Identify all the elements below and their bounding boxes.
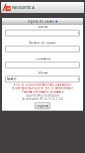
staticText: Ingresar — [37, 104, 48, 107]
staticText: Idioma — [38, 71, 47, 75]
staticText: Ingreso de usuario — [27, 20, 54, 23]
button[interactable]: Ingresar — [35, 103, 50, 109]
staticText: Si no se encuentra habilitado para acced… — [13, 83, 71, 86]
staticText: al sistema comuniquese con el administra… — [12, 86, 73, 90]
staticText: Para más información contactar a — [22, 90, 63, 94]
staticText: Nombre de usuario — [29, 41, 56, 45]
staticText: Su dirección IP es 10.0.1.24 — [22, 97, 63, 101]
staticText: Español — [6, 77, 16, 81]
staticText: Contraseña — [35, 57, 50, 61]
staticText: Sistema — [38, 25, 47, 29]
staticText: NEOGISTICA — [12, 5, 35, 10]
staticText: soporte@neogistica.com — [26, 94, 59, 97]
